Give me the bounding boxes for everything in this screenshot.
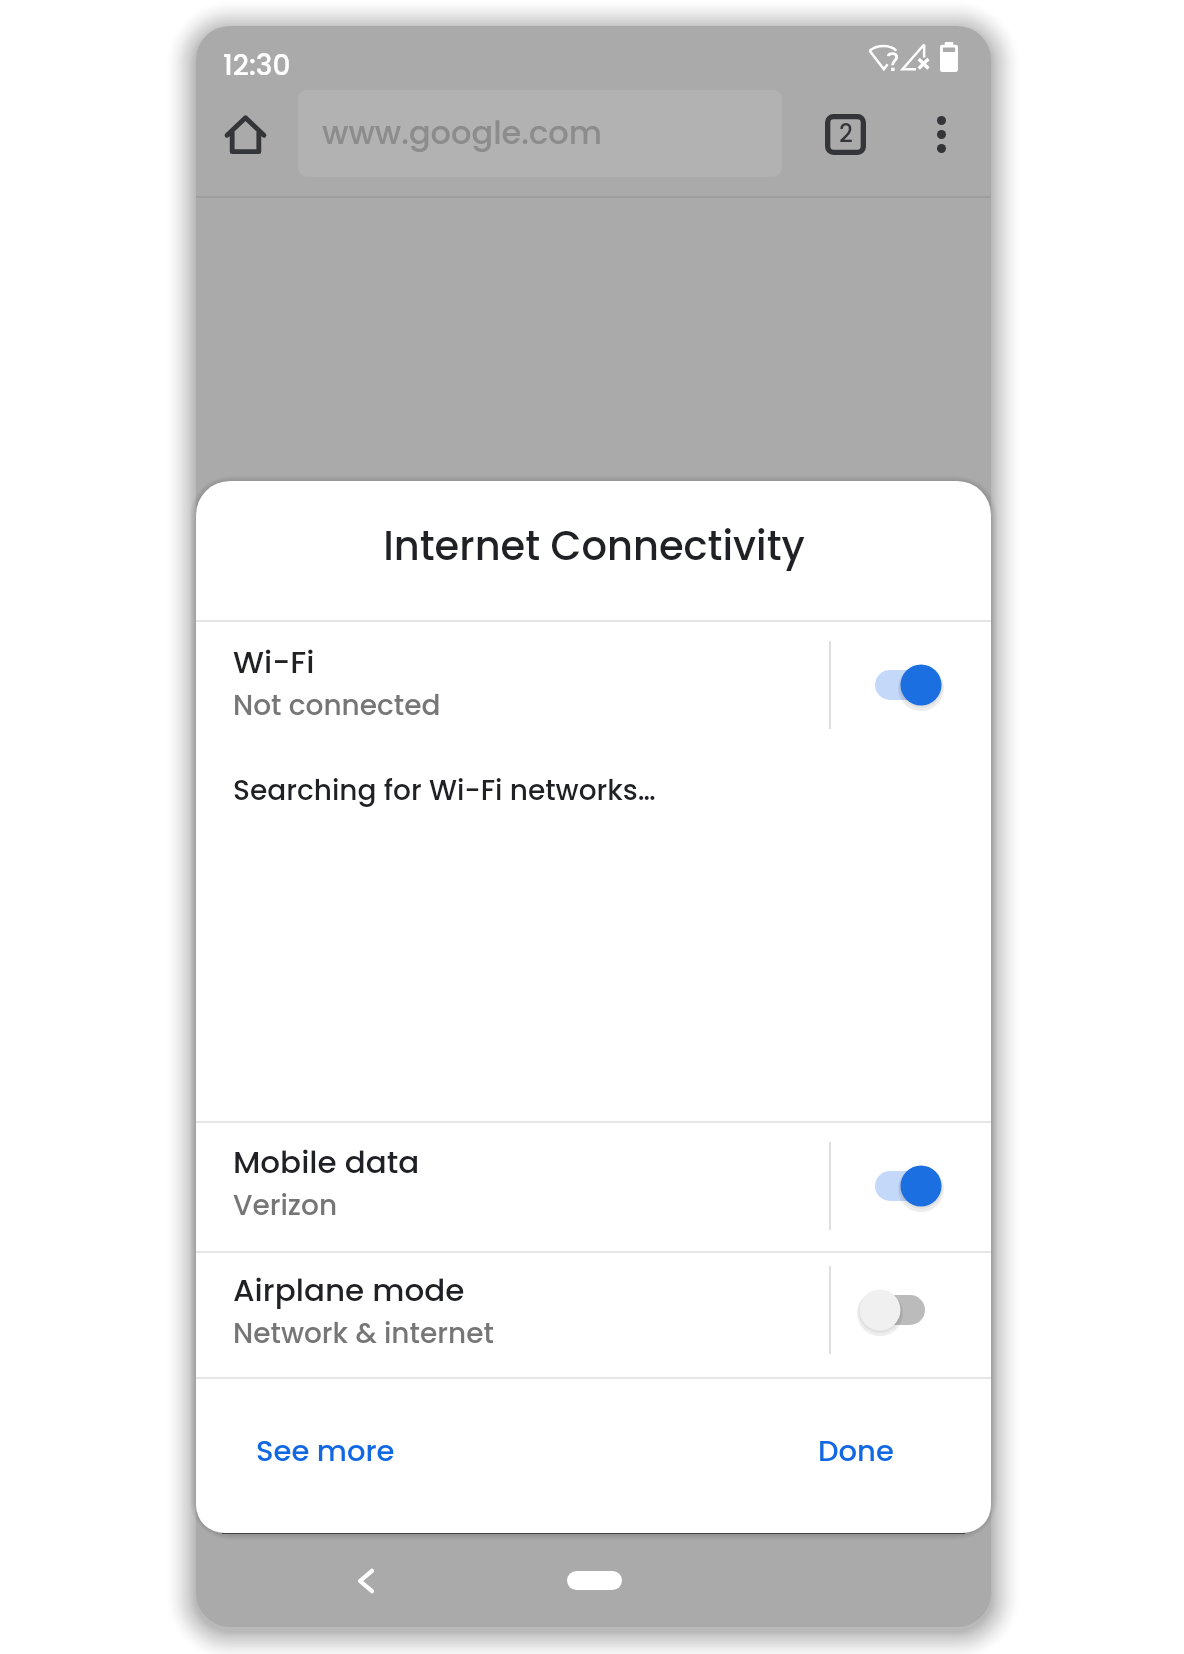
staticText: www.google.com xyxy=(322,110,602,155)
button[interactable]: Wi-Fi xyxy=(196,622,991,742)
staticText: Airplane mode xyxy=(233,1268,465,1311)
staticText: 2 xyxy=(839,117,853,151)
staticText: Verizon xyxy=(233,1186,338,1225)
staticText: 12:30 xyxy=(223,46,291,85)
button[interactable]: Wi-Fi, on xyxy=(831,625,991,745)
staticText: Wi-Fi xyxy=(233,640,315,683)
staticText: Searching for Wi-Fi networks… xyxy=(233,771,656,810)
button[interactable]: Tabs, 2 open xyxy=(813,102,877,166)
button[interactable]: Back xyxy=(337,1552,395,1610)
button[interactable]: Home xyxy=(213,102,277,166)
button[interactable]: Address bar, www.google.com xyxy=(298,90,782,177)
staticText: Done xyxy=(818,1431,894,1472)
staticText: See more xyxy=(256,1431,395,1472)
button[interactable]: Mobile data, on xyxy=(831,1122,991,1250)
button[interactable]: More options xyxy=(909,102,973,166)
button[interactable]: See more xyxy=(232,1417,419,1486)
staticText: Internet Connectivity xyxy=(383,518,805,574)
button[interactable]: Airplane mode xyxy=(196,1253,991,1377)
button[interactable]: Mobile data xyxy=(196,1123,991,1251)
staticText: Network & internet xyxy=(233,1314,494,1353)
button[interactable]: Done xyxy=(794,1417,918,1486)
staticText: Mobile data xyxy=(233,1140,420,1183)
button[interactable]: Airplane mode, off xyxy=(831,1248,991,1372)
button[interactable]: Home xyxy=(564,1549,624,1612)
staticText: Not connected xyxy=(233,686,441,725)
